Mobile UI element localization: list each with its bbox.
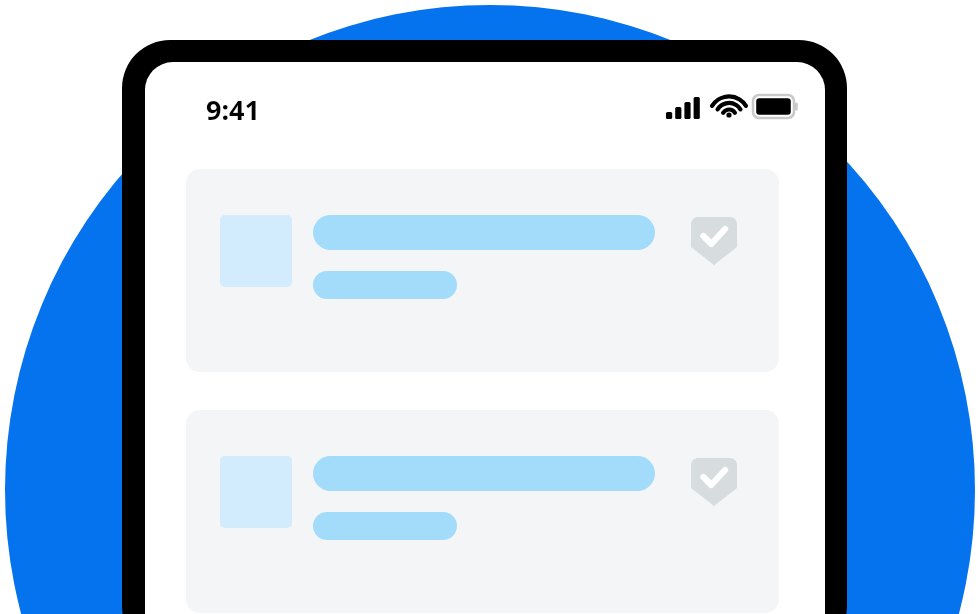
other: Cellular signal [666, 93, 704, 119]
other: Wi-Fi [713, 93, 745, 119]
button[interactable]: Verified [691, 217, 737, 267]
button[interactable]: Verified [186, 169, 779, 372]
staticText: 9:41 [206, 91, 260, 128]
other: Battery [753, 95, 799, 118]
button[interactable]: Verified [691, 458, 737, 508]
button[interactable]: Verified [186, 410, 779, 613]
